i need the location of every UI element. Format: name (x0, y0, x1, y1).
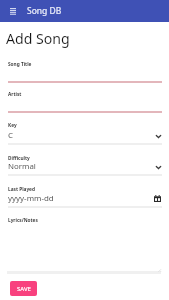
staticText: Last Played (8, 186, 35, 192)
staticText: Add Song (6, 29, 70, 48)
staticText: C (8, 130, 13, 141)
staticText: Key (8, 122, 17, 128)
button[interactable]: Normal (8, 161, 162, 176)
staticText: yyyy-mm-dd (8, 193, 54, 204)
staticText: Song Title (8, 61, 32, 67)
button[interactable]: Song Title input (8, 69, 162, 83)
button[interactable]: Artist input (8, 99, 162, 113)
button[interactable]: Lyrics and notes input (8, 226, 162, 273)
staticText: Normal (8, 161, 36, 172)
staticText: SAVE (17, 285, 31, 293)
button[interactable]: yyyy-mm-dd (8, 193, 162, 208)
button[interactable]: SAVE (10, 281, 37, 296)
staticText: Lyrics/Notes (8, 217, 38, 223)
staticText: Difficulty (8, 155, 30, 161)
other: Show date picker (154, 195, 161, 202)
button[interactable]: C (8, 130, 162, 145)
staticText: Artist (8, 91, 22, 97)
button[interactable]: Open navigation menu (9, 8, 16, 15)
staticText: Song DB (27, 5, 62, 17)
